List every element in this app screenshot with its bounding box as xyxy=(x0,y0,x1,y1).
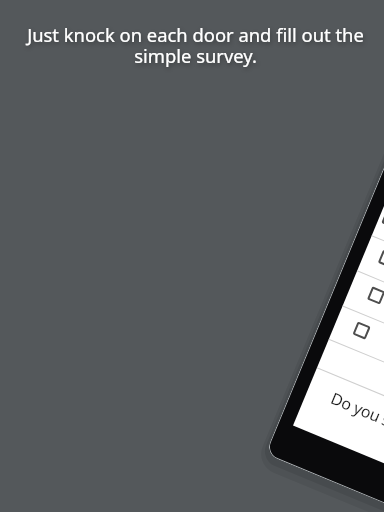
button[interactable] xyxy=(378,250,384,268)
staticText: Just knock on each door and fill out the… xyxy=(7,22,384,69)
button[interactable] xyxy=(381,210,384,228)
button[interactable]: Do you see any signs of pests? xyxy=(328,387,384,492)
button[interactable] xyxy=(367,286,384,305)
button[interactable] xyxy=(352,321,371,340)
